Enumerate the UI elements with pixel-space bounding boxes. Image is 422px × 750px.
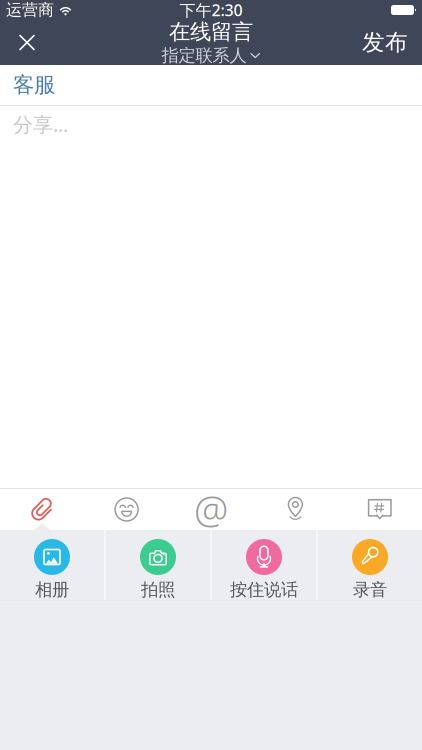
staticText: 指定联系人 [161,45,246,66]
staticText: 按住说话 [230,579,298,600]
button[interactable]: 按住说话 [211,530,316,600]
button[interactable]: 拍照 [105,530,210,600]
staticText: 拍照 [141,579,175,600]
button[interactable]: 关闭 [5,20,49,64]
button[interactable]: 提及联系人 [169,489,253,529]
button[interactable]: 表情 [84,489,169,529]
staticText: 运营商 [6,0,54,20]
staticText: 发布 [362,29,408,56]
button[interactable]: 相册 [0,530,104,600]
staticText: 客服 [13,72,55,98]
button[interactable]: 录音 [317,530,422,600]
button[interactable]: 位置 [253,489,338,529]
staticText: 分享... [13,111,68,138]
staticText: 录音 [353,579,387,600]
button[interactable]: 客服 [0,65,422,105]
button[interactable]: 发布 [362,29,422,56]
button[interactable]: 话题 [338,489,422,529]
staticText: @ [194,484,228,535]
staticText: 相册 [35,579,69,600]
staticText: 下午2:30 [179,0,242,21]
button[interactable]: 附件 [0,489,84,529]
staticText: 在线留言 [169,19,253,45]
button[interactable]: 指定联系人 [161,45,260,66]
